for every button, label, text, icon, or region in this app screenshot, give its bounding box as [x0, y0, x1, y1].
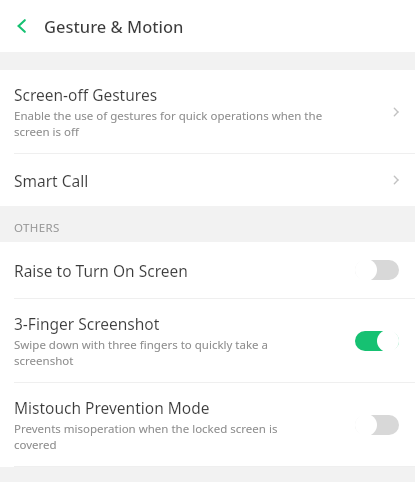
button[interactable]: 3-Finger Screenshot	[0, 299, 415, 382]
staticText: Mistouch Prevention Mode	[14, 397, 210, 418]
button[interactable]: Smart Call	[0, 154, 415, 206]
staticText: Enable the use of gestures for quick ope…	[14, 108, 323, 139]
staticText: Raise to Turn On Screen	[14, 260, 188, 281]
button[interactable]: On	[355, 330, 399, 352]
button[interactable]: Screen-off Gestures	[0, 70, 415, 153]
staticText: Gesture & Motion	[44, 15, 184, 37]
staticText: OTHERS	[14, 220, 60, 236]
button[interactable]: Off	[355, 414, 399, 436]
staticText: Swipe down with three fingers to quickly…	[14, 337, 269, 368]
staticText: Prevents misoperation when the locked sc…	[14, 421, 278, 452]
button[interactable]: Off	[355, 259, 399, 281]
button[interactable]: Mistouch Prevention Mode	[0, 383, 415, 466]
button[interactable]: Raise to Turn On Screen	[0, 242, 415, 298]
staticText: 3-Finger Screenshot	[14, 313, 160, 334]
button[interactable]: Back	[0, 4, 44, 48]
staticText: Smart Call	[14, 170, 389, 191]
staticText: Screen-off Gestures	[14, 84, 158, 105]
